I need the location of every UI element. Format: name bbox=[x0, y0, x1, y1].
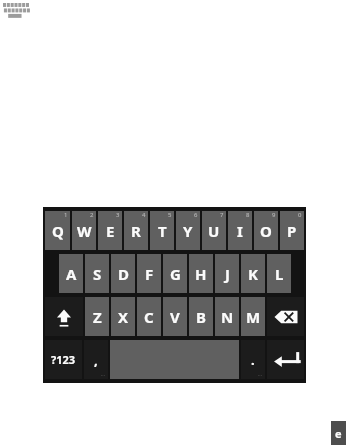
staticText: L bbox=[275, 264, 284, 284]
button[interactable]: D bbox=[111, 254, 135, 293]
staticText: H bbox=[195, 264, 207, 284]
button[interactable]: M bbox=[241, 297, 265, 336]
button[interactable]: H bbox=[189, 254, 213, 293]
staticText: V bbox=[170, 307, 180, 327]
staticText: O bbox=[260, 221, 272, 241]
button[interactable]: V bbox=[163, 297, 187, 336]
button[interactable]: O bbox=[254, 211, 278, 250]
button[interactable]: Enter bbox=[267, 340, 304, 379]
staticText: G bbox=[170, 264, 181, 284]
staticText: ... bbox=[258, 371, 263, 378]
staticText: 9 bbox=[272, 211, 276, 219]
staticText: 3 bbox=[116, 211, 120, 219]
staticText: 1 bbox=[64, 211, 68, 219]
button[interactable]: K bbox=[241, 254, 265, 293]
staticText: F bbox=[145, 264, 154, 284]
button[interactable]: Q bbox=[45, 211, 70, 250]
button[interactable]: W bbox=[72, 211, 96, 250]
staticText: 8 bbox=[246, 211, 250, 219]
staticText: ?123 bbox=[51, 352, 76, 367]
staticText: 5 bbox=[168, 211, 172, 219]
staticText: B bbox=[196, 307, 206, 327]
button[interactable]: B bbox=[189, 297, 213, 336]
staticText: R bbox=[131, 221, 141, 241]
staticText: U bbox=[208, 221, 220, 241]
other: Keyboard bbox=[3, 3, 29, 20]
button[interactable]: G bbox=[163, 254, 187, 293]
staticText: 7 bbox=[220, 211, 224, 219]
staticText: E bbox=[106, 221, 115, 241]
staticText: ... bbox=[101, 371, 106, 378]
button[interactable]: F bbox=[137, 254, 161, 293]
button[interactable]: J bbox=[215, 254, 239, 293]
staticText: W bbox=[77, 221, 92, 241]
staticText: D bbox=[118, 264, 129, 284]
button[interactable]: C bbox=[137, 297, 161, 336]
staticText: Z bbox=[93, 307, 102, 327]
staticText: A bbox=[66, 264, 77, 284]
staticText: T bbox=[158, 221, 167, 241]
button[interactable]: N bbox=[215, 297, 239, 336]
button[interactable]: Backspace bbox=[267, 297, 304, 336]
staticText: 4 bbox=[142, 211, 146, 219]
staticText: S bbox=[93, 264, 102, 284]
staticText: Y bbox=[183, 221, 193, 241]
button[interactable]: Shift bbox=[45, 297, 83, 336]
button[interactable]: U bbox=[202, 211, 226, 250]
button[interactable]: E bbox=[98, 211, 122, 250]
button[interactable]: S bbox=[85, 254, 109, 293]
button[interactable]: Input method selector bbox=[331, 421, 346, 445]
staticText: J bbox=[225, 264, 230, 284]
staticText: I bbox=[237, 221, 243, 241]
staticText: e bbox=[335, 426, 342, 441]
staticText: , bbox=[94, 351, 98, 369]
staticText: 6 bbox=[194, 211, 198, 219]
button[interactable]: A bbox=[59, 254, 83, 293]
button[interactable]: . bbox=[241, 340, 265, 379]
staticText: Q bbox=[52, 221, 64, 241]
button[interactable]: P bbox=[280, 211, 304, 250]
staticText: 2 bbox=[90, 211, 94, 219]
button[interactable]: ?123 bbox=[45, 340, 82, 379]
staticText: . bbox=[251, 351, 255, 369]
button[interactable]: T bbox=[150, 211, 174, 250]
staticText: 0 bbox=[298, 211, 302, 219]
button[interactable]: R bbox=[124, 211, 148, 250]
button[interactable]: , bbox=[84, 340, 108, 379]
staticText: K bbox=[248, 264, 258, 284]
staticText: M bbox=[246, 307, 261, 327]
button[interactable]: Z bbox=[85, 297, 109, 336]
button[interactable]: L bbox=[267, 254, 291, 293]
staticText: X bbox=[118, 307, 129, 327]
staticText: C bbox=[144, 307, 154, 327]
button[interactable]: I bbox=[228, 211, 252, 250]
staticText: N bbox=[221, 307, 234, 327]
staticText: P bbox=[287, 221, 297, 241]
button[interactable]: X bbox=[111, 297, 135, 336]
button[interactable]: Y bbox=[176, 211, 200, 250]
